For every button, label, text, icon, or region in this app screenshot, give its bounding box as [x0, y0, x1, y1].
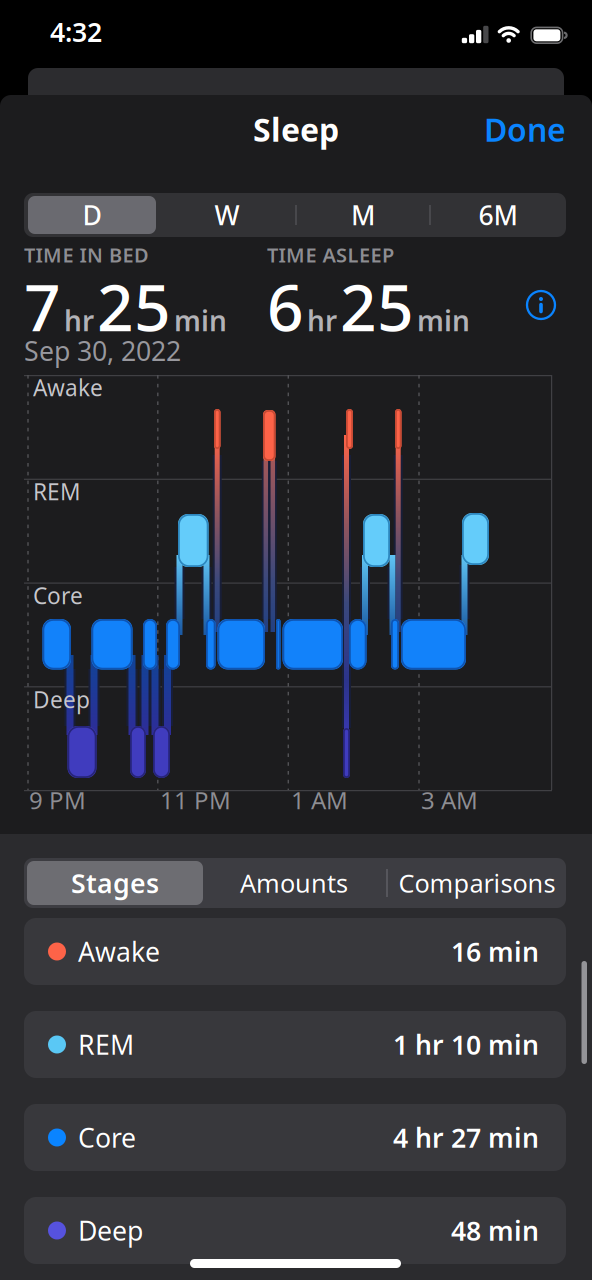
staticText: M	[351, 197, 375, 233]
button[interactable]: M	[303, 196, 423, 234]
staticText: Sep 30, 2022	[24, 333, 181, 368]
button[interactable]: Done	[484, 108, 592, 150]
staticText: TIME IN BED	[24, 241, 149, 268]
button[interactable]: Core	[24, 1104, 566, 1171]
staticText: Comparisons	[398, 866, 555, 900]
staticText: 4 hr 27 min	[393, 1120, 539, 1155]
staticText: 6M	[478, 197, 517, 233]
staticText: 7	[24, 264, 61, 349]
staticText: hr	[64, 302, 94, 339]
button[interactable]: Amounts	[214, 861, 374, 905]
staticText: Awake	[33, 372, 103, 403]
staticText: 1 AM	[291, 784, 348, 816]
staticText: min	[174, 302, 227, 339]
button[interactable]: Awake	[24, 918, 566, 985]
button[interactable]: 6M	[438, 196, 558, 234]
staticText: 3 AM	[421, 784, 478, 816]
staticText: Amounts	[240, 866, 348, 900]
staticText: min	[417, 302, 470, 339]
staticText: 1 hr 10 min	[393, 1027, 539, 1062]
staticText: REM	[78, 1027, 134, 1062]
button[interactable]: REM	[24, 1011, 566, 1078]
button[interactable]	[527, 291, 555, 319]
staticText: D	[82, 197, 101, 233]
staticText: hr	[307, 302, 337, 339]
staticText: 48 min	[451, 1213, 539, 1248]
button[interactable]: Comparisons	[388, 861, 566, 905]
staticText: 9 PM	[29, 784, 86, 816]
staticText: 4:32	[50, 14, 102, 49]
staticText: 6	[267, 264, 304, 349]
staticText: 25	[97, 264, 171, 349]
staticText: Stages	[71, 865, 159, 901]
button[interactable]: W	[167, 196, 287, 234]
staticText: 16 min	[451, 934, 539, 969]
staticText: Core	[33, 580, 83, 611]
staticText: REM	[33, 476, 81, 507]
staticText: Deep	[78, 1213, 143, 1248]
staticText: Awake	[78, 934, 160, 969]
button[interactable]: Stages	[27, 861, 203, 905]
button[interactable]: Deep	[24, 1197, 566, 1264]
staticText: W	[214, 197, 239, 233]
staticText: Core	[78, 1120, 136, 1155]
button[interactable]: D	[28, 196, 156, 234]
staticText: 25	[340, 264, 414, 349]
staticText: Deep	[33, 684, 90, 715]
staticText: 11 PM	[160, 784, 231, 816]
staticText: Done	[484, 108, 566, 150]
staticText: TIME ASLEEP	[267, 241, 394, 268]
staticText: Sleep	[253, 108, 339, 150]
